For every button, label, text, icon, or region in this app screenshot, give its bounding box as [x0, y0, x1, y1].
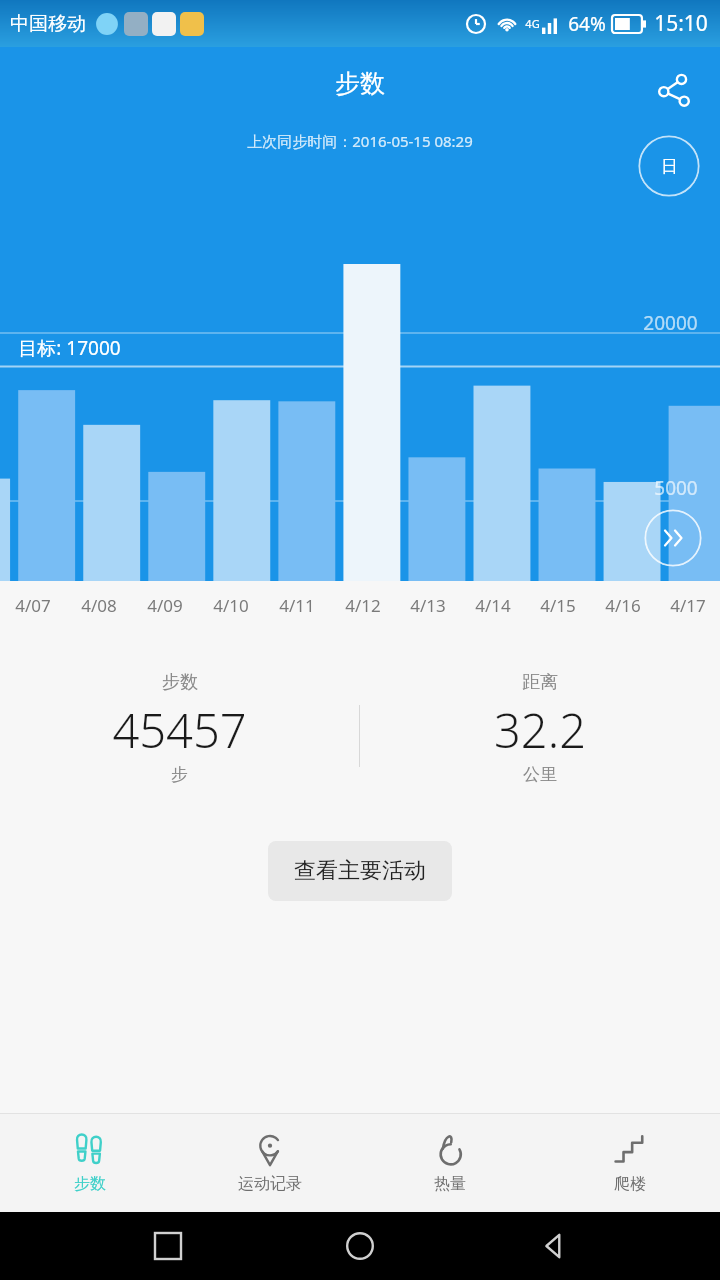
staticText: 步	[171, 764, 188, 785]
staticText: 4/08	[81, 594, 117, 617]
button[interactable]: Share	[646, 63, 702, 119]
staticText: 20000	[643, 310, 698, 336]
staticText: 距离	[522, 671, 558, 694]
staticText: 4/11	[279, 594, 315, 617]
staticText: 热量	[434, 1174, 466, 1194]
staticText: 查看主要活动	[294, 857, 426, 885]
staticText: 32.2	[494, 698, 586, 762]
staticText: 4/12	[345, 594, 381, 617]
staticText: 步数	[162, 671, 198, 694]
staticText: 4G	[525, 16, 540, 31]
staticText: 中国移动	[10, 12, 86, 36]
staticText: 4/09	[147, 594, 183, 617]
button[interactable]: Back	[528, 1222, 576, 1270]
staticText: 45457	[112, 698, 247, 762]
staticText: 4/16	[605, 594, 641, 617]
staticText: 15:10	[654, 9, 708, 38]
staticText: 4/07	[15, 594, 51, 617]
staticText: 4/10	[213, 594, 249, 617]
staticText: 日	[661, 156, 678, 177]
staticText: 目标: 17000	[18, 335, 121, 361]
button[interactable]: 热量	[360, 1114, 540, 1212]
button[interactable]: 步数	[0, 1114, 180, 1212]
button[interactable]: 日	[638, 135, 700, 197]
staticText: 4/15	[540, 594, 576, 617]
staticText: 4/14	[475, 594, 511, 617]
staticText: 上次同步时间：2016-05-15 08:29	[247, 131, 473, 151]
button[interactable]: Recents	[144, 1222, 192, 1270]
staticText: 4/17	[670, 594, 706, 617]
button[interactable]: 查看主要活动	[268, 841, 452, 901]
staticText: 运动记录	[238, 1174, 302, 1194]
button[interactable]: 运动记录	[180, 1114, 360, 1212]
button[interactable]: Next	[644, 509, 702, 567]
staticText: 步数	[74, 1174, 106, 1194]
staticText: 4/13	[410, 594, 446, 617]
staticText: 公里	[523, 764, 557, 785]
button[interactable]: Home	[336, 1222, 384, 1270]
staticText: 爬楼	[614, 1174, 646, 1194]
staticText: 步数	[335, 68, 385, 99]
staticText: 5000	[654, 475, 698, 501]
staticText: 64%	[568, 11, 606, 37]
button[interactable]: 爬楼	[540, 1114, 720, 1212]
